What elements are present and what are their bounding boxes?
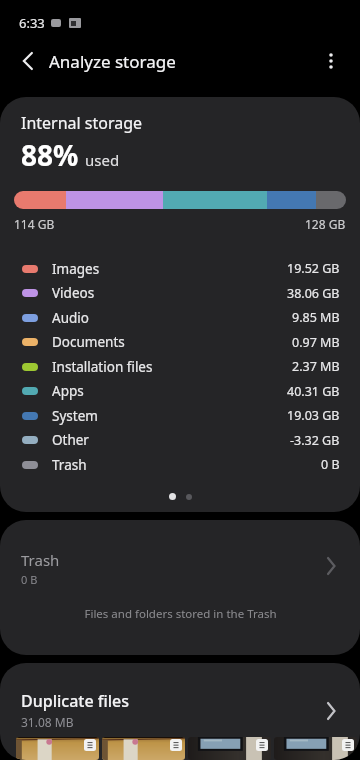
- staticText: Images: [52, 260, 100, 278]
- staticText: 6:33: [19, 14, 45, 32]
- staticText: Installation files: [52, 358, 153, 376]
- staticText: Files and folders stored in the Trash: [84, 606, 277, 622]
- staticText: 114 GB: [14, 216, 55, 232]
- button[interactable]: Duplicate files: [0, 663, 360, 760]
- staticText: 38.06 GB: [287, 285, 340, 302]
- staticText: Internal storage: [21, 112, 143, 134]
- staticText: 0 B: [321, 456, 340, 473]
- button[interactable]: Documents: [22, 330, 340, 354]
- button[interactable]: Apps: [22, 379, 340, 403]
- staticText: Audio: [52, 309, 89, 327]
- button[interactable]: Installation files: [22, 354, 340, 379]
- staticText: 19.52 GB: [287, 260, 340, 277]
- staticText: 0 B: [21, 572, 38, 587]
- staticText: Trash: [21, 550, 60, 570]
- staticText: Trash: [52, 456, 87, 474]
- staticText: 31.08 MB: [21, 714, 74, 730]
- button[interactable]: [12, 44, 46, 78]
- staticText: Other: [52, 431, 89, 449]
- button[interactable]: Trash: [0, 520, 360, 655]
- staticText: Apps: [52, 382, 84, 400]
- staticText: Videos: [52, 284, 95, 302]
- button[interactable]: Images: [22, 256, 340, 281]
- button[interactable]: Audio: [22, 305, 340, 330]
- staticText: used: [85, 150, 120, 170]
- staticText: Documents: [52, 333, 125, 351]
- button[interactable]: [316, 46, 346, 76]
- staticText: 0.97 MB: [292, 334, 340, 351]
- staticText: 9.85 MB: [292, 309, 340, 326]
- button[interactable]: Other: [22, 428, 340, 452]
- staticText: 2.37 MB: [292, 358, 340, 375]
- staticText: Analyze storage: [49, 50, 176, 73]
- staticText: System: [52, 407, 98, 425]
- staticText: 88%: [21, 136, 79, 174]
- button[interactable]: Videos: [22, 281, 340, 305]
- staticText: -3.32 GB: [290, 432, 340, 449]
- button[interactable]: System: [22, 403, 340, 428]
- staticText: 40.31 GB: [287, 383, 340, 400]
- staticText: 19.03 GB: [287, 407, 340, 424]
- button[interactable]: Trash: [22, 452, 340, 477]
- staticText: Duplicate files: [21, 690, 130, 712]
- staticText: 128 GB: [305, 216, 346, 232]
